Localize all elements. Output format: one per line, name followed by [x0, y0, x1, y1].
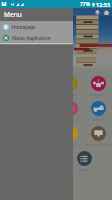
staticText: Menu — [4, 10, 22, 19]
button[interactable]: Anket — [70, 149, 98, 174]
button[interactable]: About Application — [0, 32, 73, 43]
staticText: Anket — [79, 167, 90, 172]
staticText: About Application — [12, 35, 51, 41]
staticText: Ne Var? — [63, 117, 78, 122]
button[interactable]: Ne Var? — [56, 74, 84, 99]
button[interactable]: Ne Var? — [56, 124, 84, 149]
staticText: Ne Var? — [63, 92, 78, 97]
button[interactable]: Homepage — [0, 21, 73, 32]
staticText: 77% — [80, 1, 91, 8]
button[interactable]: Notifications — [94, 9, 101, 16]
button[interactable]: Broşürler — [84, 74, 112, 99]
button[interactable]: Home — [103, 9, 110, 16]
staticText: 12:53 — [96, 1, 111, 8]
button[interactable]: Sosyal Program — [84, 99, 112, 124]
button[interactable]: Forum Danesi — [84, 124, 112, 149]
button[interactable]: Ne Var? — [56, 99, 84, 124]
staticText: Forum Danesi — [85, 142, 112, 147]
staticText: Sosyal Program — [84, 117, 112, 122]
staticText: Homepage — [12, 24, 36, 30]
staticText: Ne Var? — [63, 142, 78, 147]
staticText: Broşürler — [89, 92, 107, 97]
